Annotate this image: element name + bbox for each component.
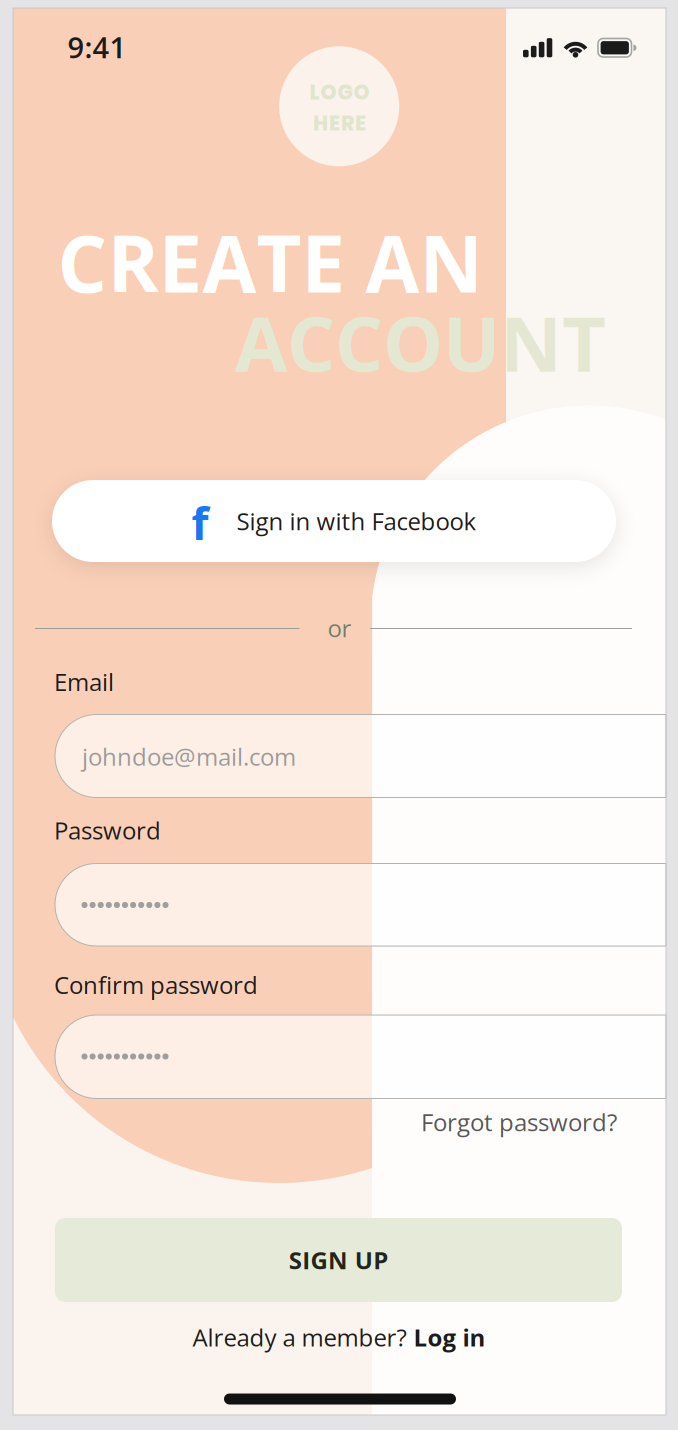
- staticText: johndoe@mail.com: [82, 740, 296, 773]
- staticText: ACCOUNT: [235, 290, 606, 394]
- button[interactable]: Password: [55, 863, 666, 946]
- staticText: Confirm password: [54, 968, 258, 1001]
- button[interactable]: Log in: [413, 1321, 485, 1354]
- staticText: f: [191, 493, 208, 553]
- staticText: CREATE AN: [57, 209, 482, 315]
- staticText: Already a member?: [192, 1321, 406, 1354]
- button[interactable]: f: [52, 480, 616, 562]
- staticText: HERE: [313, 109, 366, 138]
- button[interactable]: SIGN UP: [55, 1218, 622, 1302]
- staticText: Email: [54, 665, 114, 698]
- staticText: or: [327, 612, 351, 644]
- button[interactable]: Email: [55, 714, 666, 797]
- staticText: Sign in with Facebook: [236, 505, 476, 537]
- button[interactable]: Confirm password: [55, 1015, 666, 1098]
- staticText: Password: [54, 814, 161, 847]
- staticText: LOGO: [309, 78, 369, 107]
- staticText: Forgot password?: [421, 1106, 617, 1138]
- staticText: SIGN UP: [289, 1244, 388, 1276]
- button[interactable]: Forgot password?: [421, 1106, 617, 1138]
- staticText: 9:41: [67, 27, 126, 67]
- staticText: Log in: [413, 1321, 485, 1354]
